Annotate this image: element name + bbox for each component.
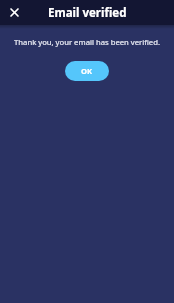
button[interactable]: Close bbox=[0, 0, 26, 25]
button[interactable]: OK bbox=[65, 61, 109, 81]
staticText: Thank you, your email has been verified. bbox=[6, 37, 168, 47]
staticText: Email verified bbox=[48, 5, 127, 21]
staticText: OK bbox=[81, 66, 93, 76]
